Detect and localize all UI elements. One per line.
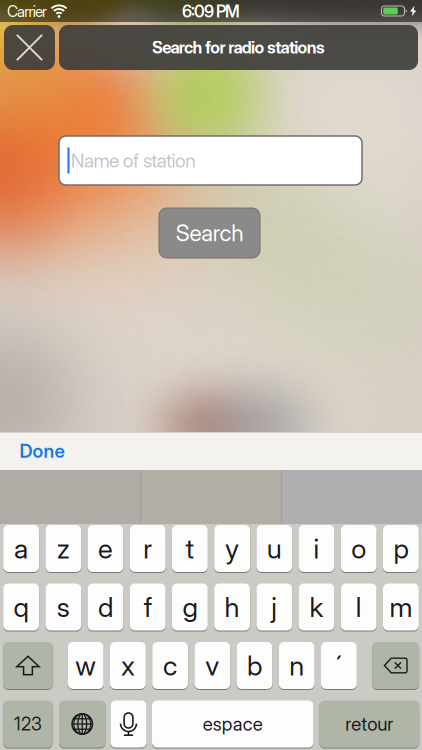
button[interactable]: b bbox=[237, 642, 272, 689]
button[interactable]: Close bbox=[4, 25, 55, 70]
staticText: q bbox=[14, 590, 29, 624]
button[interactable]: Dictation bbox=[110, 700, 146, 747]
button[interactable]: Shift bbox=[3, 642, 53, 689]
staticText: retour bbox=[345, 713, 393, 735]
staticText: Name of station bbox=[71, 149, 196, 172]
staticText: j bbox=[271, 590, 277, 624]
staticText: i bbox=[313, 532, 319, 565]
button[interactable]: 123 bbox=[3, 700, 53, 747]
staticText: Done bbox=[19, 440, 64, 462]
button[interactable]: f bbox=[130, 583, 166, 630]
button[interactable]: p bbox=[383, 525, 419, 572]
staticText: k bbox=[309, 590, 323, 624]
staticText: f bbox=[144, 590, 152, 624]
button[interactable]: t bbox=[172, 525, 208, 572]
staticText: ´ bbox=[335, 649, 342, 682]
button[interactable]: o bbox=[341, 525, 377, 572]
button[interactable]: espace bbox=[152, 700, 313, 747]
staticText: x bbox=[121, 649, 135, 682]
button[interactable]: u bbox=[256, 525, 292, 572]
staticText: d bbox=[98, 590, 113, 624]
staticText: c bbox=[163, 649, 177, 682]
staticText: n bbox=[289, 649, 304, 682]
button[interactable]: y bbox=[214, 525, 250, 572]
button[interactable]: k bbox=[299, 583, 334, 630]
staticText: y bbox=[225, 532, 239, 565]
staticText: v bbox=[205, 649, 219, 682]
button[interactable]: Search bbox=[159, 208, 260, 258]
button[interactable]: Name of station bbox=[59, 136, 362, 185]
staticText: t bbox=[185, 532, 194, 565]
staticText: Search bbox=[176, 219, 243, 247]
button[interactable]: m bbox=[383, 583, 419, 630]
staticText: b bbox=[247, 649, 262, 682]
staticText: 123 bbox=[14, 713, 42, 735]
staticText: a bbox=[14, 532, 28, 565]
button[interactable]: e bbox=[88, 525, 123, 572]
staticText: 6:09 PM bbox=[182, 1, 240, 22]
staticText: u bbox=[267, 532, 282, 565]
button[interactable]: d bbox=[88, 583, 123, 630]
staticText: r bbox=[143, 532, 152, 565]
button[interactable]: retour bbox=[319, 700, 419, 747]
button[interactable]: c bbox=[152, 642, 188, 689]
button[interactable]: z bbox=[45, 525, 81, 572]
button[interactable]: x bbox=[110, 642, 146, 689]
staticText: espace bbox=[203, 713, 263, 735]
button[interactable]: j bbox=[256, 583, 292, 630]
staticText: m bbox=[389, 590, 412, 624]
staticText: w bbox=[75, 649, 96, 682]
button[interactable]: h bbox=[214, 583, 250, 630]
staticText: s bbox=[57, 590, 70, 624]
button[interactable]: a bbox=[3, 525, 39, 572]
button[interactable]: n bbox=[279, 642, 315, 689]
button[interactable]: g bbox=[172, 583, 208, 630]
staticText: p bbox=[393, 532, 408, 565]
staticText: l bbox=[356, 590, 362, 624]
button[interactable]: Next keyboard bbox=[59, 700, 105, 747]
button[interactable]: l bbox=[341, 583, 377, 630]
button[interactable]: ´ bbox=[321, 642, 357, 689]
staticText: z bbox=[57, 532, 70, 565]
button[interactable]: Delete bbox=[372, 642, 419, 689]
button[interactable]: q bbox=[3, 583, 39, 630]
staticText: h bbox=[225, 590, 240, 624]
button[interactable]: r bbox=[130, 525, 166, 572]
button[interactable]: v bbox=[194, 642, 230, 689]
staticText: e bbox=[98, 532, 113, 565]
button[interactable]: i bbox=[299, 525, 334, 572]
staticText: Search for radio stations bbox=[152, 37, 325, 58]
staticText: o bbox=[351, 532, 366, 565]
staticText: Carrier bbox=[7, 2, 47, 21]
button[interactable]: s bbox=[45, 583, 81, 630]
button[interactable]: w bbox=[68, 642, 104, 689]
staticText: g bbox=[182, 590, 197, 624]
button[interactable]: Done bbox=[7, 432, 76, 470]
